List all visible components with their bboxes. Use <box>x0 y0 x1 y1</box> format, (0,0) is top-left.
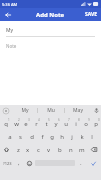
button[interactable]: May <box>65 105 91 116</box>
button[interactable]: g <box>47 130 57 143</box>
staticText: o <box>84 120 88 128</box>
button[interactable]: Back <box>2 9 13 20</box>
staticText: b <box>58 146 62 154</box>
staticText: ?123 <box>3 161 12 166</box>
staticText: May <box>73 107 83 114</box>
button[interactable]: k <box>77 130 87 143</box>
staticText: f <box>41 133 44 141</box>
button[interactable]: SAVE <box>83 9 100 20</box>
button[interactable]: r <box>31 117 41 130</box>
button[interactable]: i <box>71 117 81 130</box>
button[interactable]: v <box>43 143 54 156</box>
staticText: h <box>60 133 64 141</box>
staticText: x <box>26 146 30 154</box>
button[interactable]: u <box>61 117 71 130</box>
staticText: 4 <box>38 118 40 122</box>
staticText: j <box>71 133 73 141</box>
staticText: s <box>19 133 22 141</box>
staticText: u <box>64 120 68 128</box>
button[interactable]: e <box>21 117 31 130</box>
staticText: r <box>35 120 38 128</box>
button[interactable]: Note <box>6 43 95 49</box>
button[interactable]: m <box>76 143 87 156</box>
button[interactable]: z <box>13 143 23 156</box>
button[interactable]: Google <box>0 105 12 116</box>
staticText: My <box>6 27 14 34</box>
staticText: 1 <box>8 118 10 122</box>
staticText: Mu <box>47 107 55 114</box>
button[interactable]: s <box>15 130 26 143</box>
staticText: t <box>45 120 48 128</box>
staticText: 5 <box>48 118 50 122</box>
staticText: z <box>17 146 20 154</box>
button[interactable]: ?123 <box>0 156 14 170</box>
staticText: 6 <box>58 118 60 122</box>
staticText: Add Note <box>36 11 65 19</box>
button[interactable]: f <box>37 130 47 143</box>
button[interactable]: o <box>81 117 91 130</box>
staticText: p <box>94 120 98 128</box>
staticText: i <box>75 120 77 128</box>
staticText: v <box>47 146 51 154</box>
staticText: Note <box>6 43 17 49</box>
staticText: m <box>79 146 85 154</box>
button[interactable]: j <box>67 130 77 143</box>
button[interactable]: l <box>87 130 97 143</box>
staticText: 8 <box>78 118 80 122</box>
button[interactable]: Enter <box>86 156 101 170</box>
button[interactable]: n <box>65 143 76 156</box>
button[interactable]: Emoji <box>24 156 34 170</box>
staticText: 0 <box>98 118 100 122</box>
button[interactable]: Shift <box>0 143 13 156</box>
button[interactable]: q <box>0 117 11 130</box>
button[interactable]: Voice input <box>91 105 101 116</box>
staticText: e <box>24 120 28 128</box>
staticText: My <box>21 107 29 114</box>
staticText: q <box>4 120 8 128</box>
staticText: 9 <box>88 118 90 122</box>
button[interactable]: y <box>51 117 61 130</box>
button[interactable]: w <box>11 117 21 130</box>
staticText: g <box>50 133 54 141</box>
staticText: 3 <box>28 118 30 122</box>
staticText: d <box>30 133 34 141</box>
staticText: 5:36 AM <box>2 2 18 7</box>
staticText: n <box>69 146 73 154</box>
button[interactable]: x <box>23 143 33 156</box>
staticText: a <box>8 133 12 141</box>
staticText: w <box>14 120 19 128</box>
staticText: . <box>80 159 82 167</box>
button[interactable]: Mu <box>38 105 64 116</box>
button[interactable]: d <box>26 130 37 143</box>
button[interactable]: a <box>4 130 15 143</box>
button[interactable]: t <box>41 117 51 130</box>
staticText: l <box>91 133 93 141</box>
button[interactable]: My <box>6 27 95 37</box>
button[interactable]: c <box>33 143 43 156</box>
button[interactable]: b <box>54 143 65 156</box>
staticText: y <box>54 120 58 128</box>
button[interactable]: . <box>76 156 86 170</box>
button[interactable]: , <box>14 156 24 170</box>
staticText: k <box>80 133 84 141</box>
button[interactable]: p <box>91 117 101 130</box>
staticText: 7 <box>68 118 70 122</box>
button[interactable]: h <box>57 130 67 143</box>
button[interactable]: My <box>12 105 37 116</box>
button[interactable]: Backspace <box>87 143 101 156</box>
staticText: c <box>37 146 40 154</box>
staticText: SAVE <box>85 11 98 18</box>
staticText: , <box>18 159 20 167</box>
staticText: 2 <box>18 118 20 122</box>
